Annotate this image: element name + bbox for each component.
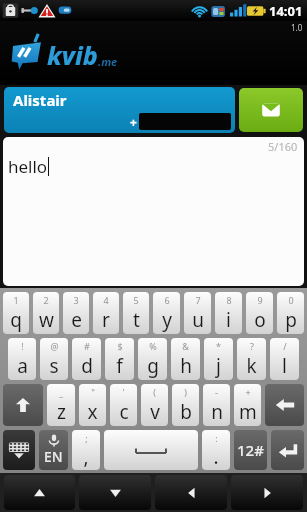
staticText: .me [98, 54, 118, 69]
button[interactable]: + [234, 384, 261, 426]
button[interactable]: 5/160 [3, 137, 304, 286]
button[interactable]: _ [47, 384, 75, 426]
button[interactable]: ? [237, 338, 266, 380]
staticText: 12# [237, 440, 264, 460]
staticText: hello [8, 155, 48, 178]
staticText: , [83, 444, 89, 469]
staticText: Alistair [13, 90, 67, 110]
staticText: p [285, 307, 297, 333]
button[interactable]: & [171, 338, 200, 380]
staticText: x [87, 399, 98, 425]
staticText: d [81, 353, 93, 379]
staticText: e [71, 307, 82, 333]
staticText: 5 [133, 294, 139, 306]
staticText: l [282, 353, 287, 379]
staticText: / [283, 340, 287, 352]
button[interactable]: 2 [33, 292, 59, 334]
staticText: 9 [257, 294, 263, 306]
button[interactable]: @ [40, 338, 68, 380]
button[interactable]: left [155, 475, 227, 510]
staticText: k [246, 353, 257, 379]
button[interactable]: ) [172, 384, 199, 426]
staticText: EN [44, 447, 63, 466]
staticText: % [149, 340, 157, 352]
staticText: z [57, 399, 66, 425]
button[interactable]: / [270, 338, 299, 380]
button[interactable]: * [204, 338, 233, 380]
button[interactable]: Hide keyboard [3, 430, 35, 470]
button[interactable]: Enter [271, 430, 304, 470]
staticText: q [10, 307, 22, 333]
button[interactable]: Send message [239, 88, 303, 132]
button[interactable]: " [79, 384, 106, 426]
button[interactable]: % [138, 338, 167, 380]
staticText: y [162, 307, 172, 333]
button[interactable]: ( [141, 384, 168, 426]
staticText: 1.0 [291, 22, 303, 33]
staticText: . [213, 444, 219, 469]
staticText: a [17, 353, 28, 379]
staticText: - [215, 386, 218, 398]
staticText: s [49, 353, 59, 379]
staticText: + [245, 386, 251, 398]
button[interactable]: 9 [246, 292, 273, 334]
button[interactable]: up [4, 475, 75, 510]
staticText: $ [117, 340, 123, 352]
staticText: u [192, 307, 204, 333]
staticText: w [39, 307, 54, 333]
staticText: + [130, 114, 137, 130]
staticText: & [182, 340, 189, 352]
button[interactable]: # [72, 338, 101, 380]
staticText: kvib [47, 38, 98, 72]
button[interactable]: 12# [234, 430, 267, 470]
staticText: 1 [13, 294, 19, 306]
staticText: t [133, 307, 140, 333]
staticText: 2 [43, 294, 49, 306]
staticText: : [215, 432, 218, 444]
button[interactable]: EN [39, 430, 68, 470]
button[interactable]: $ [105, 338, 134, 380]
button[interactable]: 5 [123, 292, 149, 334]
staticText: f [116, 353, 123, 379]
staticText: 14:01 [269, 2, 303, 20]
staticText: @ [50, 340, 59, 352]
staticText: j [216, 353, 221, 379]
button[interactable]: - [203, 384, 230, 426]
button[interactable]: ! [8, 338, 36, 380]
button[interactable]: Backspace [265, 384, 304, 426]
staticText: 7 [195, 294, 201, 306]
staticText: ' [122, 386, 125, 398]
staticText: ? [250, 340, 254, 352]
button[interactable]: 8 [215, 292, 242, 334]
staticText: m [239, 399, 257, 425]
button[interactable]: 3 [63, 292, 89, 334]
button[interactable]: 4 [93, 292, 119, 334]
button[interactable]: ' [110, 384, 137, 426]
button[interactable]: 6 [153, 292, 180, 334]
button[interactable]: down [79, 475, 151, 510]
button[interactable]: 0 [277, 292, 304, 334]
staticText: 5/160 [268, 139, 298, 154]
button[interactable]: right [231, 475, 303, 510]
button[interactable]: Shift [3, 384, 43, 426]
staticText: ! [21, 340, 24, 352]
staticText: h [180, 353, 192, 379]
staticText: r [102, 307, 110, 333]
staticText: " [91, 386, 95, 398]
button[interactable]: Space [104, 430, 198, 470]
staticText: 8 [226, 294, 232, 306]
staticText: 4 [103, 294, 109, 306]
staticText: 0 [288, 294, 294, 306]
staticText: g [147, 353, 159, 379]
button[interactable]: : [202, 430, 230, 470]
staticText: * [216, 340, 221, 352]
staticText: ) [184, 386, 187, 398]
button[interactable]: 1 [3, 292, 29, 334]
staticText: # [84, 340, 90, 352]
button[interactable]: 7 [184, 292, 211, 334]
button[interactable]: Alistair [4, 87, 235, 133]
staticText: _ [59, 386, 63, 398]
button[interactable]: ; [72, 430, 100, 470]
staticText: o [254, 307, 266, 333]
staticText: 3 [73, 294, 79, 306]
